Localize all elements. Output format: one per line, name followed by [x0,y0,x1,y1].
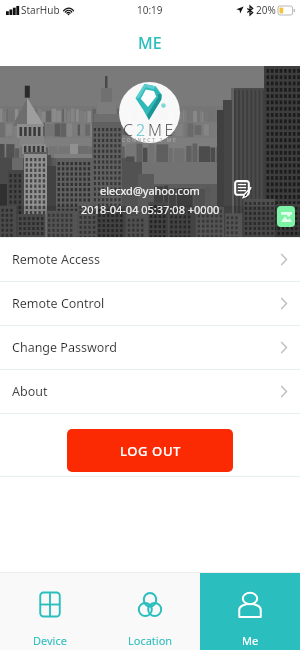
staticText: 2018-04-04 05:37:08 +0000 [81,202,220,217]
staticText: Device [33,633,67,648]
staticText: StarHub [21,3,60,17]
staticText: About [12,383,48,400]
staticText: 10:19 [137,3,163,17]
staticText: Location [128,633,173,648]
button[interactable]: Change photo [277,206,295,227]
staticText: Change Password [12,339,117,356]
staticText: Me [242,633,259,648]
staticText: 2 [136,119,148,141]
staticText: LOG OUT [120,442,181,460]
staticText: elecxd@yahoo.com [100,183,200,198]
button[interactable]: About [0,370,300,413]
staticText: ME [138,32,162,54]
button[interactable]: LOG OUT [67,429,233,472]
button[interactable]: Device [0,573,100,650]
staticText: ME [148,119,177,141]
button[interactable]: Me [200,573,300,650]
staticText: Remote Control [12,295,105,312]
staticText: C [123,119,136,141]
button[interactable]: Location [100,573,200,650]
staticText: Remote Access [12,251,100,268]
button[interactable]: Remote Control [0,282,300,325]
button[interactable]: Edit profile [231,177,255,201]
staticText: 20% [256,3,276,17]
button[interactable]: Remote Access [0,238,300,281]
button[interactable]: Change Password [0,326,300,369]
staticText: CONNECT 2 ME [122,137,178,144]
